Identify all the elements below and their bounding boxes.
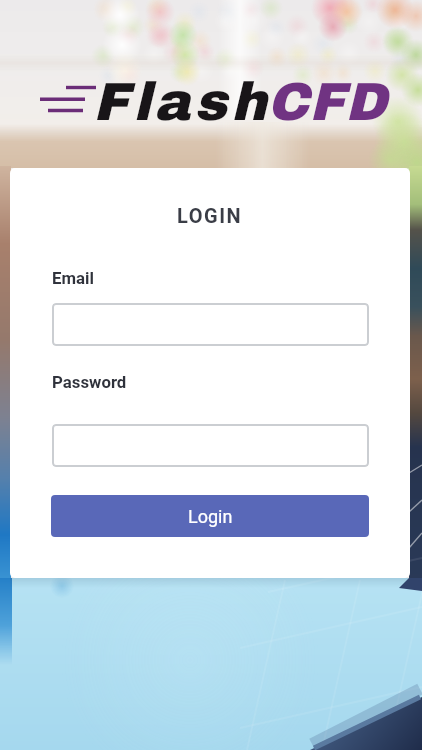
button[interactable]: Login [51,495,369,537]
button[interactable] [52,303,369,346]
staticText: Login [188,506,233,527]
staticText: Email [52,268,94,288]
staticText: LOGIN [177,204,243,227]
staticText: Password [52,372,127,392]
button[interactable] [52,424,369,467]
